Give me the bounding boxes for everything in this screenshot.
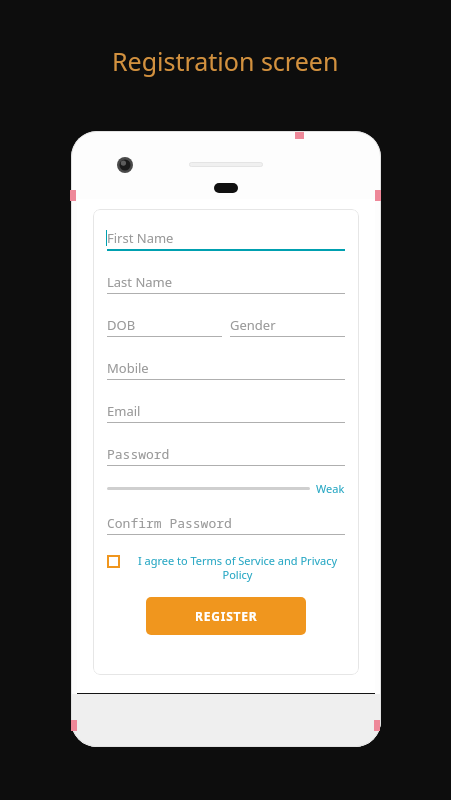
staticText: Gender bbox=[230, 316, 276, 334]
staticText: REGISTER bbox=[195, 608, 258, 624]
staticText: Email bbox=[107, 402, 141, 420]
button[interactable]: Confirm Password bbox=[107, 512, 345, 535]
staticText: Weak bbox=[316, 481, 345, 496]
button[interactable]: Email bbox=[107, 400, 345, 423]
staticText: Registration screen bbox=[112, 44, 339, 78]
button[interactable]: Last Name bbox=[107, 271, 345, 294]
staticText: Mobile bbox=[107, 359, 149, 377]
button[interactable]: First Name bbox=[107, 227, 345, 251]
button[interactable]: Gender bbox=[230, 314, 345, 337]
staticText: Password bbox=[107, 445, 170, 463]
other: Agree to terms checkbox bbox=[107, 555, 120, 568]
staticText: DOB bbox=[107, 316, 136, 334]
button[interactable]: Agree to terms checkbox bbox=[107, 551, 345, 584]
button[interactable]: Password bbox=[107, 443, 345, 466]
button[interactable]: DOB bbox=[107, 314, 222, 337]
button[interactable]: REGISTER bbox=[146, 597, 306, 635]
staticText: Last Name bbox=[107, 273, 173, 291]
staticText: I agree to Terms of Service and Privacy … bbox=[130, 553, 345, 582]
staticText: First Name bbox=[107, 229, 174, 247]
staticText: Confirm Password bbox=[107, 514, 232, 532]
button[interactable]: Mobile bbox=[107, 357, 345, 380]
